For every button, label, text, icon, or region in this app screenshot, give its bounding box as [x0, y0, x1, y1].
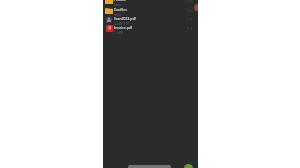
button[interactable]: Invoice.pdf	[103, 24, 198, 33]
staticText: 14:02	[186, 0, 193, 3]
button[interactable]: Scan2023.pdf	[103, 15, 198, 24]
button[interactable]: Docfiles	[103, 6, 198, 15]
staticText: Docfiles	[114, 7, 127, 12]
staticText: Photos	[114, 0, 126, 2]
button[interactable]: Add	[184, 164, 193, 168]
staticText: 9:51	[187, 9, 193, 13]
staticText: Invoice.pdf	[114, 25, 133, 30]
staticText: folder	[114, 13, 122, 17]
staticText: 2.4 MB PDF	[114, 22, 130, 26]
staticText: 1.1 MB	[114, 31, 123, 35]
staticText: 1:30	[187, 18, 193, 22]
staticText: 9:18	[187, 27, 193, 31]
button[interactable]: Profile	[194, 4, 198, 11]
button[interactable]: Photos	[103, 0, 198, 5]
staticText: folder	[114, 3, 122, 7]
staticText: Scan2023.pdf	[114, 16, 136, 21]
